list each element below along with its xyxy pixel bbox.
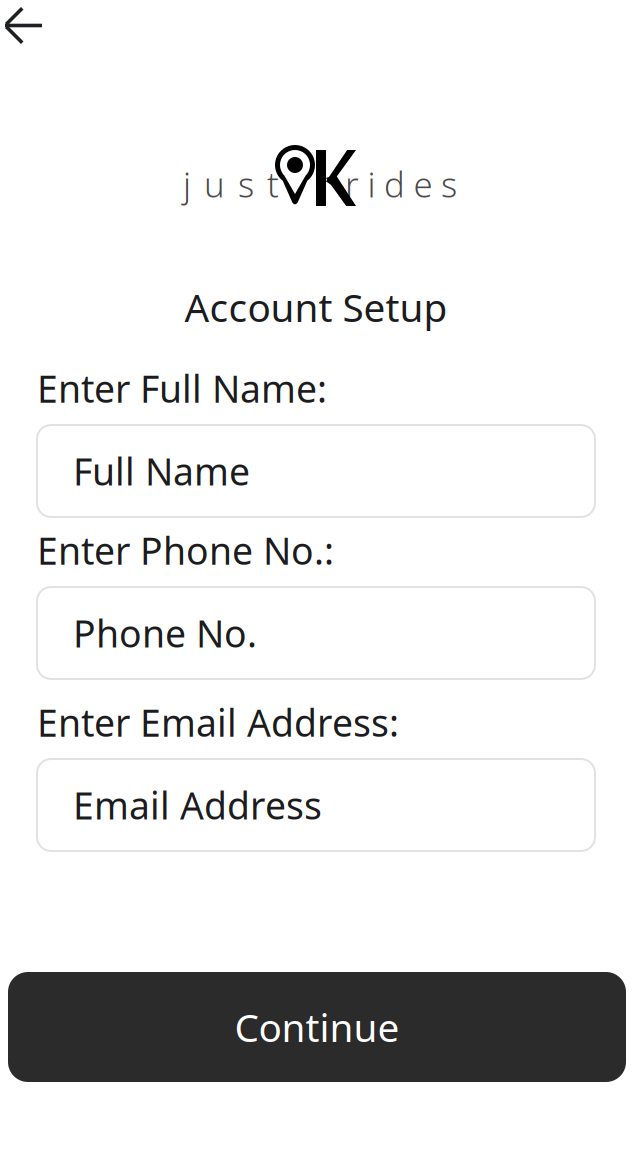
staticText: r	[345, 161, 359, 207]
button[interactable]: Full Name	[37, 425, 595, 517]
button[interactable]: Continue	[0, 972, 632, 1082]
staticText: e	[413, 161, 432, 207]
staticText: Account Setup	[184, 281, 447, 333]
staticText: Enter Email Address:	[37, 697, 399, 747]
button[interactable]: Email Address	[37, 759, 595, 851]
button[interactable]: Phone No.	[37, 587, 595, 679]
staticText: Full Name	[73, 446, 250, 496]
staticText: s	[238, 161, 254, 207]
staticText: Enter Full Name:	[37, 363, 327, 413]
staticText: Enter Phone No.:	[37, 525, 334, 575]
staticText: d	[384, 161, 405, 207]
staticText: Email Address	[73, 780, 322, 830]
button[interactable]: Back	[0, 0, 43, 45]
staticText: u	[204, 161, 225, 207]
staticText: Phone No.	[73, 608, 257, 658]
staticText: j	[183, 161, 191, 207]
staticText: t	[267, 161, 279, 207]
staticText: i	[367, 161, 375, 207]
staticText: Continue	[234, 1001, 399, 1053]
staticText: s	[441, 161, 457, 207]
